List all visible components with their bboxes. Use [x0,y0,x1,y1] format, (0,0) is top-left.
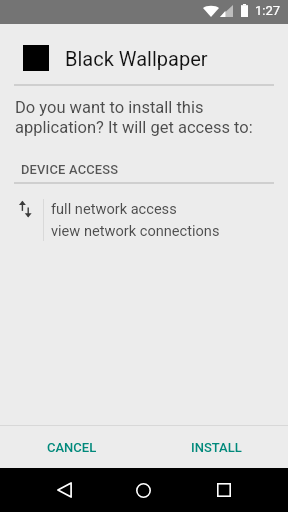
button[interactable]: full network access [0,190,288,248]
button[interactable]: INSTALL [144,426,288,468]
staticText: full network access [51,200,177,217]
button[interactable]: Home [119,468,167,512]
staticText: 1:27 [255,3,281,18]
staticText: INSTALL [191,440,242,455]
button[interactable]: Back [40,468,88,512]
button[interactable]: CANCEL [0,426,144,468]
staticText: DEVICE ACCESS [21,162,119,177]
button[interactable]: Recent apps [200,468,248,512]
staticText: view network connections [51,222,220,239]
staticText: Do you want to install this application?… [15,98,267,137]
staticText: Black Wallpaper [65,47,208,70]
staticText: CANCEL [47,440,97,455]
